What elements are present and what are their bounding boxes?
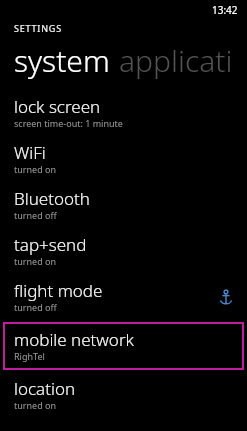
staticText: 13:42	[212, 3, 238, 17]
staticText: turned on	[14, 399, 57, 411]
button[interactable]: system	[14, 40, 110, 81]
button[interactable]: lock screen	[0, 90, 247, 136]
staticText: tap+send	[14, 233, 87, 256]
staticText: WiFi	[14, 141, 46, 164]
staticText: lock screen	[14, 95, 101, 118]
staticText: turned off	[14, 209, 57, 221]
staticText: turned on	[14, 163, 57, 175]
staticText: screen time-out: 1 minute	[14, 117, 123, 129]
staticText: SETTINGS	[14, 22, 62, 34]
button[interactable]: WiFi	[0, 136, 247, 182]
staticText: Bluetooth	[14, 187, 90, 210]
button[interactable]: applications	[119, 40, 247, 81]
staticText: location	[14, 377, 76, 400]
staticText: mobile network	[14, 328, 134, 351]
other: Cursor	[215, 286, 237, 308]
staticText: turned on	[14, 255, 57, 267]
button[interactable]: location	[0, 372, 247, 418]
staticText: turned off	[14, 301, 57, 313]
staticText: flight mode	[14, 279, 103, 302]
button[interactable]: tap+send	[0, 228, 247, 274]
staticText: RighTel	[14, 350, 45, 362]
button[interactable]: flight mode	[0, 274, 247, 320]
button[interactable]: mobile network	[0, 320, 247, 372]
button[interactable]: Bluetooth	[0, 182, 247, 228]
